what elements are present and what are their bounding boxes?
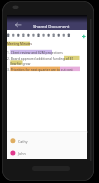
button[interactable] — [7, 15, 87, 30]
button[interactable]: John — [7, 147, 87, 158]
staticText: Cathy — [18, 139, 28, 144]
button[interactable]: Cathy — [7, 135, 87, 146]
staticText: Meeting Minutes — [7, 42, 33, 46]
staticText: Shared Document — [33, 23, 70, 29]
staticText: 2. Board approved additional funding of … — [7, 56, 74, 60]
staticText: 3. Priorities for next quarter are to cu… — [7, 67, 73, 71]
staticText: llow for grow — [10, 61, 31, 65]
staticText: 1. Client review and $2M projections — [7, 50, 63, 54]
staticText: John — [18, 151, 26, 156]
